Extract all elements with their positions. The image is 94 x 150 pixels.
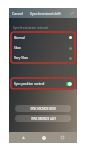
staticText: Synchronized drift: [30, 11, 61, 16]
button[interactable]: Recents: [58, 133, 67, 142]
staticText: Synchronization interval: [13, 26, 49, 30]
button[interactable]: Normal: [11, 32, 75, 43]
button[interactable]: Cancel: [9, 9, 27, 18]
staticText: Normal: [14, 36, 25, 40]
button[interactable]: Very Slow: [11, 53, 75, 63]
button[interactable]: Done: [68, 9, 76, 17]
button[interactable]: Home: [39, 133, 48, 142]
button[interactable]: Slow: [11, 43, 75, 53]
staticText: Cancel: [12, 11, 24, 16]
staticText: Very Slow: [14, 56, 28, 60]
button[interactable]: SYNCHRONIZE NOW: [15, 105, 71, 112]
staticText: Slow: [14, 46, 21, 50]
staticText: Sync position control: [14, 82, 45, 86]
staticText: SYNCHRONIZE NOW: [30, 107, 56, 111]
staticText: SYNCHRONIZE LAST: [31, 117, 56, 121]
button[interactable]: Back: [19, 133, 28, 142]
button[interactable]: Sync position control: [9, 78, 77, 89]
button[interactable]: SYNCHRONIZE LAST: [15, 115, 71, 122]
